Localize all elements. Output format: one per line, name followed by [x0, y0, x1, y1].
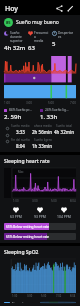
button[interactable]: 65% Below resting heart rate: [4, 233, 76, 240]
staticText: 3:33: [16, 129, 25, 135]
staticText: Hoy: [5, 4, 19, 14]
staticText: ahora medio: [34, 124, 52, 128]
staticText: 3:00: [26, 101, 32, 105]
staticText: 65% Below resting heart rate: [6, 225, 50, 229]
staticText: 85: [6, 20, 11, 25]
staticText: Normal: [12, 302, 24, 303]
staticText: Despertares: [58, 31, 74, 39]
staticText: Frecuencia media: [34, 31, 50, 43]
staticText: 24% Sueño lig…: [45, 108, 69, 112]
staticText: Sueño total: [56, 124, 73, 128]
staticText: 1:00: [4, 101, 10, 105]
staticText: 63: [28, 44, 35, 52]
button[interactable]: 85: [0, 15, 80, 152]
staticText: 4h 32m: [4, 44, 26, 52]
staticText: 8:04: [16, 143, 25, 149]
button[interactable]: 65% Below resting heart rate: [4, 223, 76, 230]
staticText: Sleeping heart rate: [4, 158, 50, 165]
staticText: 5:00: [48, 101, 54, 105]
staticText: 8:04: [70, 199, 76, 203]
staticText: 1h 33min: [32, 143, 53, 149]
button[interactable]: Edit: [65, 3, 76, 14]
staticText: 7:00: [70, 101, 76, 105]
staticText: 3:00: [32, 199, 38, 203]
staticText: Sueño ligero: [34, 138, 52, 142]
button[interactable]: Sleeping SpO2: [0, 246, 80, 306]
staticText: 2. 59h: [4, 113, 22, 121]
staticText: 65% Below resting heart rate: [6, 235, 50, 239]
staticText: 5:00: [41, 294, 47, 298]
staticText: 7:02: [56, 294, 62, 298]
staticText: 1. 33h: [40, 113, 58, 121]
staticText: Max: [18, 170, 24, 174]
staticText: 1:00: [13, 199, 19, 203]
staticText: 63 PPM: [10, 214, 22, 219]
button[interactable]: Share: [54, 3, 65, 14]
staticText: Fin del sueño: [11, 138, 30, 142]
staticText: 5: [52, 40, 56, 48]
staticText: 5:00: [51, 199, 57, 203]
staticText: 8:04: [70, 294, 76, 298]
staticText: 84% Sueño pr…: [9, 108, 32, 112]
staticText: 1:00: [12, 294, 18, 298]
staticText: Sueño muy bueno: [16, 19, 59, 26]
staticText: Sueño durante superior: [10, 31, 26, 43]
staticText: 3:00: [27, 294, 33, 298]
staticText: 4h 32min: [54, 129, 75, 135]
staticText: Sueño medio: [11, 124, 30, 128]
button[interactable]: Sleeping heart rate: [0, 155, 80, 243]
staticText: Sleeping SpO2: [4, 249, 39, 256]
staticText: 104 PPM: [57, 214, 71, 219]
staticText: 2h 56min: [32, 129, 53, 135]
staticText: 93 PPM: [34, 214, 46, 219]
